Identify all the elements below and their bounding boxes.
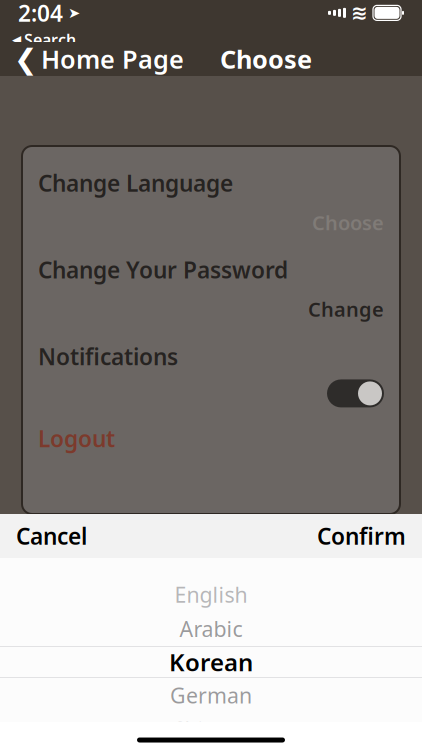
button[interactable]: ❮ bbox=[0, 36, 198, 82]
staticText: Choose bbox=[220, 42, 312, 76]
staticText: German bbox=[170, 681, 252, 709]
staticText: Change bbox=[308, 296, 384, 322]
staticText: Chinese bbox=[171, 715, 250, 744]
button[interactable]: Logout bbox=[38, 423, 384, 453]
staticText: Korean bbox=[169, 646, 253, 678]
staticText: Change Your Password bbox=[38, 255, 288, 285]
staticText: Arabic bbox=[179, 615, 242, 643]
staticText: 2:04 bbox=[18, 0, 63, 28]
staticText: ◀ bbox=[12, 33, 21, 46]
button[interactable]: Choose bbox=[38, 209, 384, 236]
staticText: English bbox=[174, 580, 247, 609]
staticText: Notifications bbox=[38, 341, 178, 371]
staticText: Search bbox=[24, 29, 76, 50]
staticText: Cancel bbox=[16, 521, 87, 551]
staticText: Change Language bbox=[38, 168, 233, 198]
staticText: Logout bbox=[38, 423, 115, 453]
staticText: ≋ bbox=[351, 1, 368, 24]
staticText: Choose bbox=[312, 209, 384, 236]
staticText: ➤ bbox=[68, 5, 80, 21]
button[interactable]: Cancel bbox=[0, 511, 103, 561]
button[interactable]: Confirm bbox=[301, 511, 422, 561]
staticText: Confirm bbox=[317, 521, 406, 551]
button[interactable]: Notifications toggle bbox=[38, 379, 384, 407]
staticText: Home Page bbox=[41, 42, 184, 76]
button[interactable]: Change bbox=[38, 296, 384, 322]
staticText: ❮ bbox=[14, 43, 37, 75]
